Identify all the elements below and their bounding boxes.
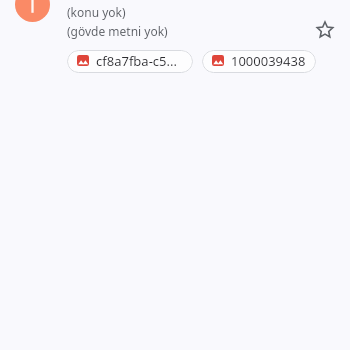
button[interactable]: cf8a7fba-c5... [67, 50, 193, 73]
staticText: cf8a7fba-c5... [96, 52, 177, 70]
staticText: 1000039438 [231, 52, 306, 70]
button[interactable]: 1000039438 [202, 50, 316, 73]
staticText: (konu yok) [67, 4, 126, 20]
staticText: (gövde metni yok) [67, 23, 168, 39]
button[interactable]: (konu yok) [67, 4, 168, 39]
button[interactable]: Sender avatar [15, 0, 50, 22]
button[interactable]: Star [311, 17, 339, 45]
